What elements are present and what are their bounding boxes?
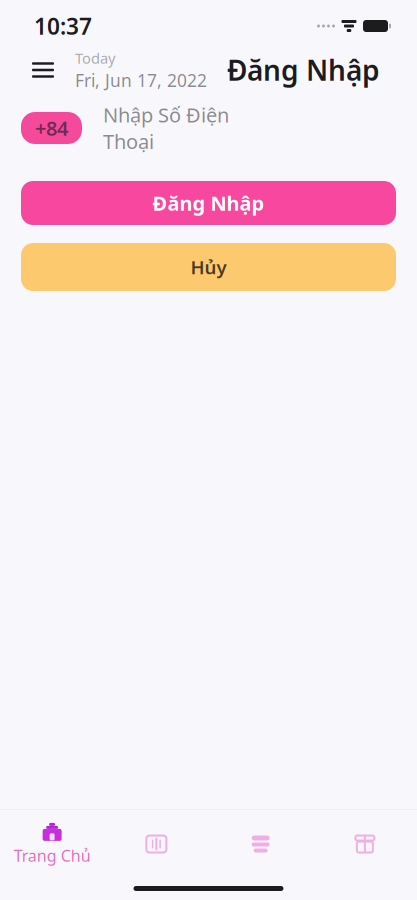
button[interactable]: Quà Tặng [313, 816, 417, 872]
staticText: Đăng Nhập [152, 190, 264, 216]
button[interactable]: Đăng Nhập [21, 181, 396, 225]
staticText: +84 [35, 115, 68, 141]
button[interactable]: Trang Chủ [0, 816, 104, 872]
button[interactable]: Hủy [21, 243, 396, 291]
staticText: Fri, Jun 17, 2022 [75, 69, 207, 92]
button[interactable]: +84 [21, 112, 82, 144]
staticText: Đăng Nhập [227, 51, 380, 89]
staticText: Hủy [190, 255, 226, 279]
button[interactable]: Nhập Số Điện Thoại [82, 112, 239, 144]
button[interactable]: Menu [21, 48, 65, 92]
staticText: Nhập Số Điện Thoại [103, 101, 229, 154]
button[interactable]: Danh Mục [208, 816, 313, 872]
button[interactable]: Sách [104, 816, 208, 872]
staticText: 10:37 [34, 11, 92, 41]
staticText: Today [75, 48, 115, 68]
staticText: Trang Chủ [14, 845, 91, 866]
